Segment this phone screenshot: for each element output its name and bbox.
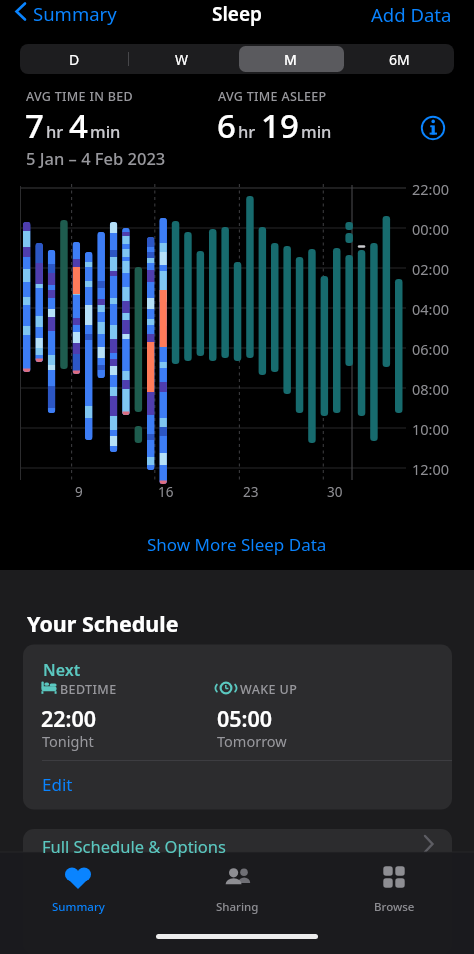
staticText: W <box>175 50 189 69</box>
staticText: 16 <box>158 483 174 501</box>
staticText: 00:00 <box>412 219 450 239</box>
staticText: 6M <box>389 50 410 69</box>
staticText: Add Data <box>371 2 452 27</box>
staticText: 22:00 <box>412 179 450 199</box>
staticText: 5 Jan – 4 Feb 2023 <box>26 147 166 169</box>
staticText: 10:00 <box>412 419 450 439</box>
staticText: AVG TIME ASLEEP <box>218 88 327 105</box>
staticText: 04:00 <box>412 299 450 319</box>
staticText: Summary <box>52 899 105 915</box>
staticText: 9 <box>75 483 83 501</box>
staticText: 4 <box>69 103 88 148</box>
button[interactable]: D <box>20 44 128 74</box>
staticText: 23 <box>243 483 259 501</box>
staticText: Tonight <box>42 731 94 751</box>
button[interactable] <box>18 858 138 920</box>
staticText: hr <box>46 120 64 142</box>
button[interactable]: Edit <box>30 770 94 800</box>
staticText: 08:00 <box>412 379 450 399</box>
staticText: 7 <box>25 103 44 148</box>
staticText: M <box>284 50 297 69</box>
staticText: WAKE UP <box>240 681 298 698</box>
button[interactable]: W <box>128 44 236 74</box>
staticText: BEDTIME <box>60 681 117 698</box>
staticText: 22:00 <box>41 704 97 733</box>
staticText: 19 <box>261 103 299 148</box>
staticText: 06:00 <box>412 339 450 359</box>
staticText: Show More Sleep Data <box>147 533 327 556</box>
button[interactable] <box>177 858 297 920</box>
button[interactable] <box>334 858 454 920</box>
button[interactable]: Show More Sleep Data <box>147 533 327 556</box>
staticText: Sleep <box>212 1 262 27</box>
staticText: Edit <box>42 773 73 796</box>
staticText: Next <box>43 659 81 681</box>
staticText: Tomorrow <box>217 731 287 751</box>
staticText: Summary <box>33 1 117 26</box>
staticText: 05:00 <box>217 704 273 733</box>
staticText: 12:00 <box>412 459 450 479</box>
staticText: min <box>90 120 121 142</box>
button[interactable]: 6M <box>345 44 454 74</box>
button[interactable]: Add Data <box>356 0 466 28</box>
staticText: D <box>69 50 80 69</box>
staticText: Your Schedule <box>27 609 179 638</box>
staticText: hr <box>238 120 256 142</box>
staticText: min <box>301 120 332 142</box>
staticText: 02:00 <box>412 259 450 279</box>
staticText: AVG TIME IN BED <box>26 88 133 105</box>
button[interactable]: M <box>236 44 345 74</box>
staticText: Sharing <box>216 899 259 915</box>
staticText: 30 <box>327 483 343 501</box>
staticText: 6 <box>217 103 236 148</box>
button[interactable] <box>418 113 448 143</box>
button[interactable]: Full Schedule & Options <box>23 829 452 889</box>
staticText: Browse <box>374 899 415 915</box>
button[interactable]: Summary <box>8 0 128 28</box>
staticText: Full Schedule & Options <box>42 835 226 857</box>
